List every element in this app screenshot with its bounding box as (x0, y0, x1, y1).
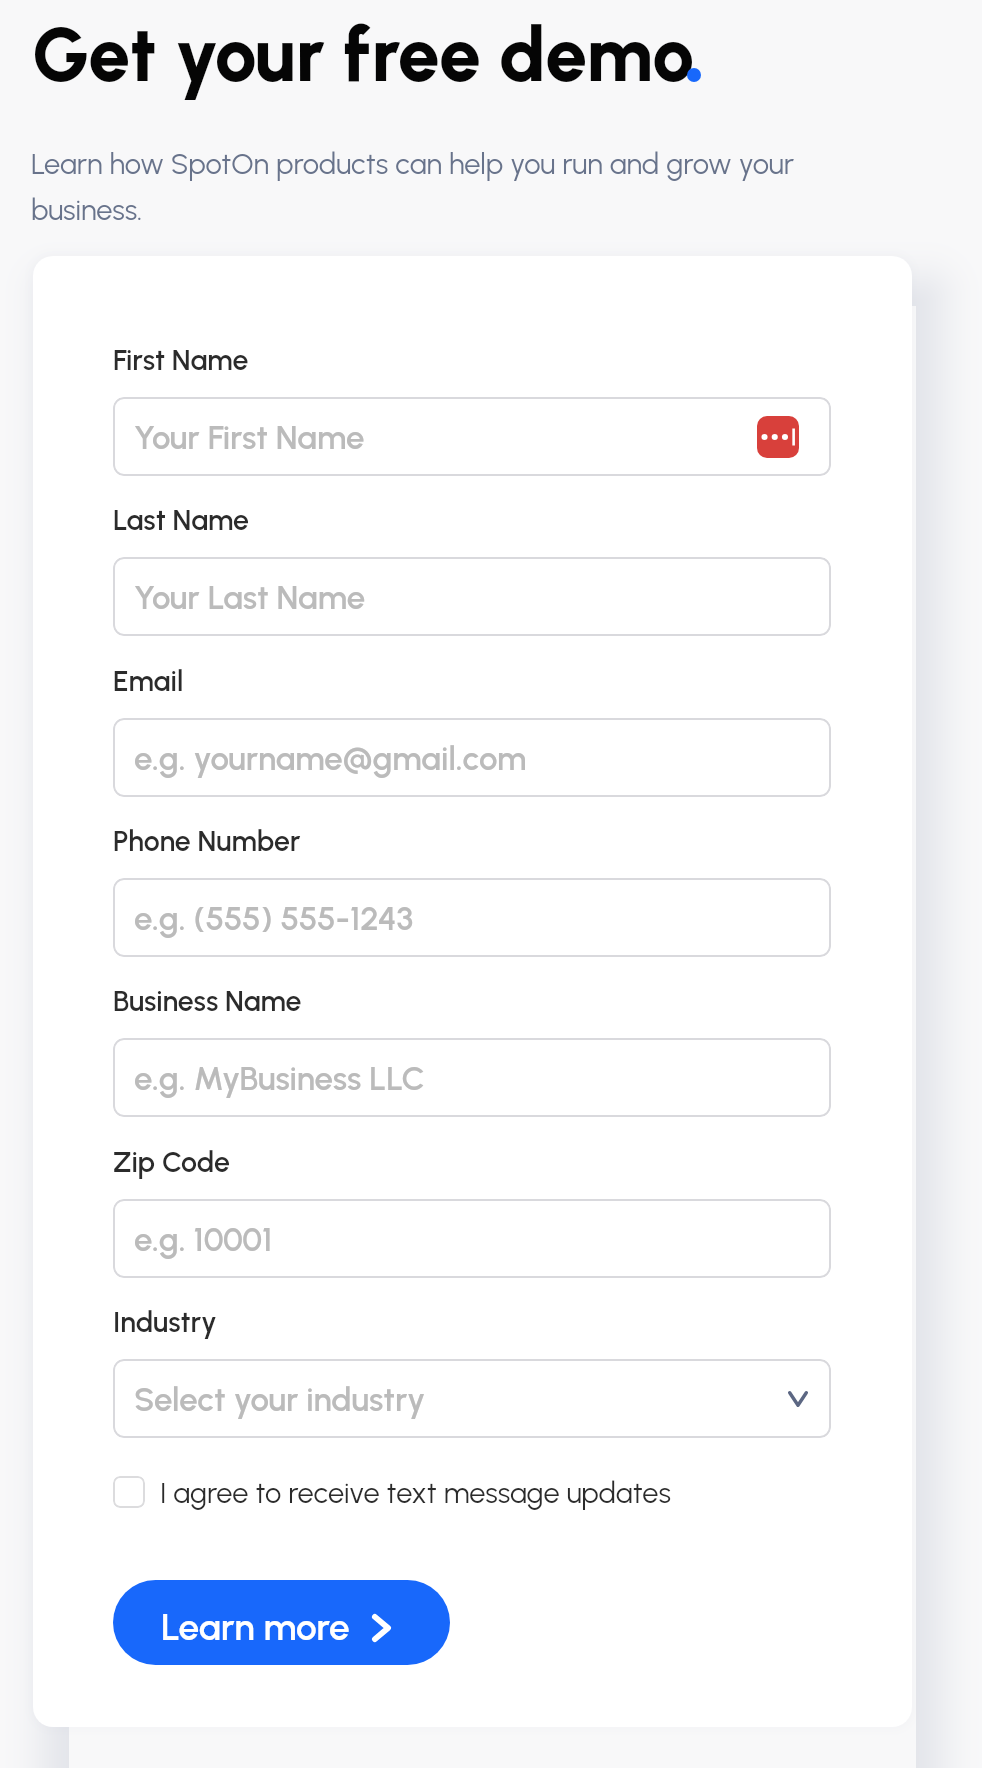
button[interactable]: Learn more (113, 1580, 450, 1665)
staticText: Email (113, 664, 184, 698)
staticText: Phone Number (113, 824, 301, 858)
staticText: Learn how SpotOn products can help you r… (31, 146, 831, 227)
button[interactable]: e.g. yourname@gmail.com (113, 718, 831, 797)
button[interactable]: Autofill password (757, 416, 799, 458)
staticText: Get your free demo (32, 10, 695, 100)
staticText: Business Name (113, 984, 302, 1018)
button[interactable]: e.g. (555) 555-1243 (113, 878, 831, 957)
button[interactable]: e.g. MyBusiness LLC (113, 1038, 831, 1117)
staticText: I agree to receive text message updates (160, 1475, 671, 1510)
button[interactable]: Select your industry (113, 1359, 831, 1438)
staticText: e.g. (555) 555-1243 (134, 899, 414, 939)
button[interactable]: Your First Name (113, 397, 831, 476)
staticText: First Name (113, 343, 249, 377)
staticText: e.g. 10001 (134, 1220, 273, 1260)
staticText: e.g. yourname@gmail.com (134, 739, 527, 779)
button[interactable]: Your Last Name (113, 557, 831, 636)
staticText: Learn more (161, 1605, 350, 1649)
staticText: Your Last Name (134, 578, 366, 618)
button[interactable]: e.g. 10001 (113, 1199, 831, 1278)
staticText: Select your industry (134, 1380, 426, 1420)
staticText: e.g. MyBusiness LLC (134, 1059, 425, 1099)
staticText: Zip Code (113, 1145, 230, 1179)
staticText: Industry (113, 1305, 217, 1339)
button[interactable]: I agree to receive text message updates (113, 1468, 671, 1516)
staticText: Last Name (113, 503, 250, 537)
staticText: Your First Name (134, 418, 365, 458)
